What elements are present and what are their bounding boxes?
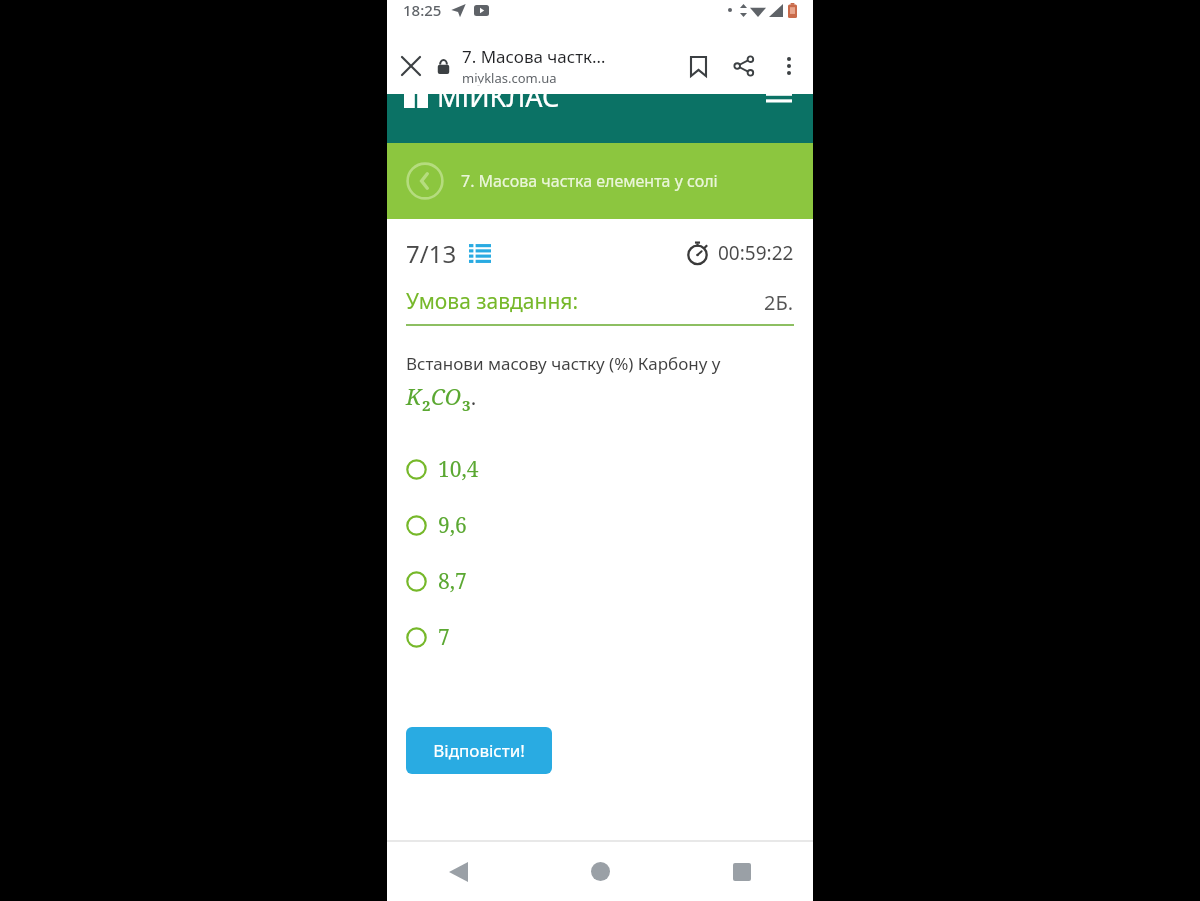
- button[interactable]: Share: [721, 43, 767, 89]
- other: Task list: [469, 243, 491, 264]
- button[interactable]: Back: [387, 143, 813, 219]
- button[interactable]: Bookmark: [675, 43, 721, 89]
- staticText: 2: [422, 395, 431, 415]
- button[interactable]: 7. Масова частк…: [462, 45, 669, 87]
- staticText: 7: [438, 623, 450, 652]
- other: Back: [406, 162, 444, 200]
- button[interactable]: MIYKLAS home: [404, 78, 560, 115]
- staticText: .: [471, 384, 476, 411]
- button[interactable]: 10,4: [387, 441, 813, 497]
- staticText: 10,4: [438, 455, 479, 484]
- button[interactable]: More options: [767, 44, 811, 88]
- staticText: 8,7: [438, 567, 467, 596]
- staticText: МІЙКЛАС: [437, 78, 560, 115]
- button[interactable]: Close tab: [387, 42, 435, 90]
- button[interactable]: 7: [387, 609, 813, 665]
- staticText: 7. Масова частка елемента у солі: [461, 170, 718, 192]
- staticText: CO: [431, 381, 462, 411]
- button[interactable]: Recent apps: [671, 842, 813, 901]
- staticText: K: [406, 381, 422, 411]
- staticText: Умова завдання:: [406, 287, 579, 316]
- staticText: 2Б.: [764, 289, 794, 316]
- button[interactable]: Menu: [762, 80, 796, 114]
- button[interactable]: Back: [387, 842, 529, 901]
- staticText: Встанови масову частку (%) Карбону у: [406, 352, 721, 375]
- staticText: 3: [462, 395, 471, 415]
- staticText: Відповісти!: [433, 739, 525, 762]
- button[interactable]: 7/13: [406, 237, 491, 270]
- staticText: 00:59:22: [718, 240, 794, 266]
- button[interactable]: 8,7: [387, 553, 813, 609]
- button[interactable]: Home: [529, 842, 671, 901]
- staticText: 9,6: [438, 511, 467, 540]
- button[interactable]: 9,6: [387, 497, 813, 553]
- staticText: miyklas.com.ua: [462, 69, 557, 87]
- staticText: 18:25: [403, 0, 442, 20]
- staticText: 7. Масова частк…: [462, 45, 606, 68]
- staticText: 7/13: [406, 237, 457, 270]
- button[interactable]: Відповісти!: [406, 727, 552, 774]
